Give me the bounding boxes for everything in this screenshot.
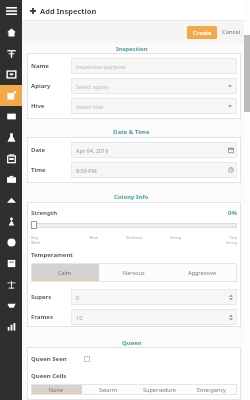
staticText: Name [31, 62, 71, 70]
button[interactable]: Apiaries [0, 190, 22, 211]
staticText: Time [31, 166, 71, 174]
staticText: Cancel [222, 28, 241, 36]
other: Open Hive list [228, 104, 232, 108]
button[interactable]: Notes [0, 106, 22, 127]
button[interactable]: None [31, 384, 82, 395]
button[interactable]: 0 [71, 289, 237, 305]
staticText: Calm [58, 269, 72, 276]
button[interactable]: Select apiary [71, 78, 237, 94]
other: Pick time [228, 167, 234, 173]
staticText: None [49, 386, 64, 393]
staticText: 10 [76, 314, 83, 321]
staticText: Apr 04, 2019 [76, 147, 109, 154]
staticText: Inspection [116, 45, 148, 53]
staticText: Date & Time [113, 128, 150, 136]
button[interactable]: Photos [0, 169, 22, 190]
button[interactable]: Queen seen checkbox [84, 356, 90, 362]
button[interactable]: Calm [31, 263, 99, 282]
staticText: 0 [76, 294, 80, 301]
button[interactable]: Inventory [0, 64, 22, 85]
button[interactable]: Supersedure [133, 384, 185, 395]
staticText: Moderate [114, 235, 155, 240]
staticText: Queen [122, 339, 142, 347]
other: Open Apiary list [228, 84, 232, 88]
button[interactable]: Hives [0, 43, 22, 64]
button[interactable]: Journal [0, 253, 22, 274]
staticText: 8:59 PM [76, 167, 97, 174]
button[interactable]: inspection purpose [71, 58, 237, 74]
staticText: Swarm [99, 386, 117, 393]
staticText: Aggressive [188, 269, 217, 276]
button[interactable]: Apr 04, 2019 [71, 142, 237, 158]
other: Adjust Supers [229, 294, 233, 301]
button[interactable]: Strength slider [31, 221, 37, 229]
staticText: Strength [31, 209, 58, 217]
staticText: Frames [31, 313, 71, 321]
staticText: Create [193, 29, 212, 37]
button[interactable]: Queens [0, 211, 22, 232]
staticText: Supersedure [143, 386, 176, 393]
button[interactable]: Aggressive [168, 263, 237, 282]
button[interactable]: Stats [0, 316, 22, 337]
staticText: Temperament [31, 251, 73, 259]
button[interactable]: Create [187, 26, 217, 39]
staticText: Hive [31, 102, 71, 110]
button[interactable]: Treatments [0, 127, 22, 148]
staticText: Date [31, 146, 71, 154]
staticText: Nervous [123, 269, 145, 276]
button[interactable]: Menu [0, 0, 22, 22]
staticText: Add Inspection [40, 6, 97, 16]
button[interactable]: Nervous [99, 263, 168, 282]
staticText: Very Strong [196, 235, 237, 245]
staticText: Select apiary [76, 83, 109, 90]
other: Pick date [228, 147, 234, 153]
button[interactable]: Market [0, 295, 22, 316]
button[interactable]: Home [0, 22, 22, 43]
button[interactable]: Select hive [71, 98, 237, 114]
staticText: Emergency [197, 386, 226, 393]
staticText: inspection purpose [76, 63, 126, 70]
staticText: Queen Cells [31, 372, 67, 380]
button[interactable]: Emergency [185, 384, 237, 395]
button[interactable]: Swarm [82, 384, 133, 395]
button[interactable]: Cancel [222, 25, 241, 39]
staticText: Strong [155, 235, 196, 240]
staticText: Queen Seen [31, 355, 84, 363]
staticText: Supers [31, 293, 71, 301]
button[interactable]: 10 [71, 309, 237, 325]
button[interactable]: Inspections [0, 85, 22, 106]
button[interactable]: Reports [0, 232, 22, 253]
button[interactable]: Harvest [0, 148, 22, 169]
staticText: Select hive [76, 103, 104, 110]
button[interactable]: Scales [0, 274, 22, 295]
staticText: Weak [73, 235, 114, 240]
other: Adjust Frames [229, 314, 233, 321]
button[interactable]: 8:59 PM [71, 162, 237, 178]
staticText: 0% [228, 209, 237, 217]
staticText: Very Weak [31, 235, 73, 245]
staticText: Colony Info [114, 193, 149, 201]
staticText: Apiary [31, 82, 71, 90]
